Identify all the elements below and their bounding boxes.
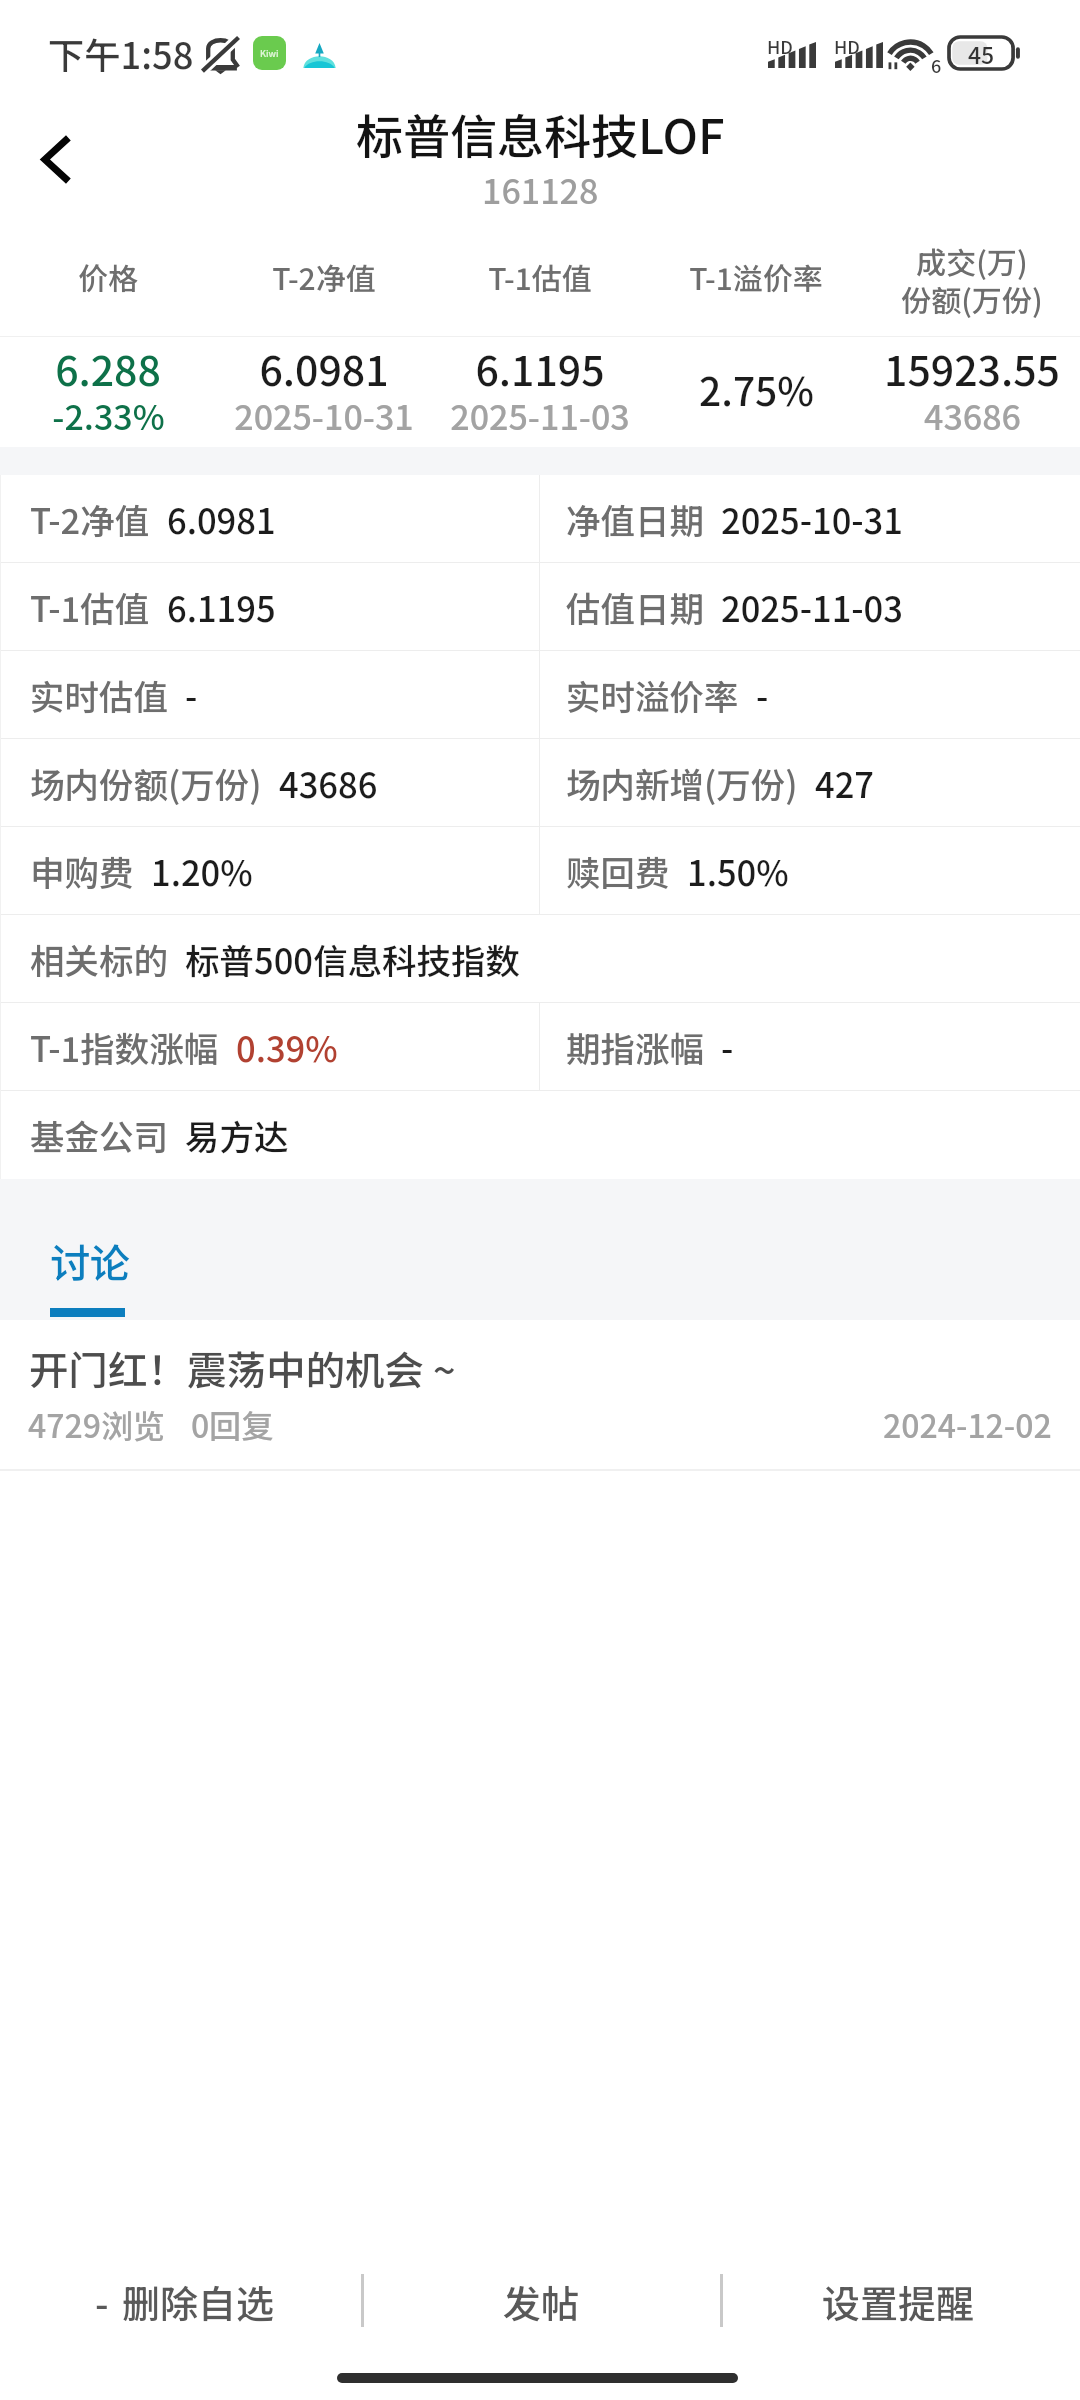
staticText: 相关标的 bbox=[30, 934, 168, 984]
button[interactable]: 设置提醒 bbox=[719, 2244, 1078, 2359]
button[interactable]: 发帖 bbox=[361, 2244, 721, 2359]
staticText: 2024-12-02 bbox=[883, 1401, 1052, 1447]
staticText: 427 bbox=[815, 758, 874, 808]
button[interactable]: T-1估值 bbox=[0, 563, 1080, 650]
staticText: 2025-10-31 bbox=[234, 391, 414, 440]
staticText: 6 bbox=[931, 52, 942, 78]
button[interactable]: T-2净值 bbox=[0, 475, 1080, 562]
staticText: 2025-10-31 bbox=[721, 494, 903, 544]
staticText: 43686 bbox=[924, 391, 1021, 440]
staticText: 实时溢价率 bbox=[566, 670, 739, 720]
staticText: 估值日期 bbox=[566, 582, 704, 632]
staticText: 161128 bbox=[482, 165, 599, 214]
button[interactable]: 实时估值 bbox=[0, 651, 1080, 738]
staticText: - bbox=[95, 2274, 109, 2329]
staticText: - bbox=[721, 1022, 734, 1072]
staticText: 标普信息科技LOF bbox=[356, 99, 725, 167]
staticText: HD bbox=[834, 33, 860, 59]
staticText: 下午1:58 bbox=[48, 27, 194, 80]
button[interactable]: 场内份额(万份) bbox=[0, 739, 1080, 826]
staticText: 6.1195 bbox=[475, 338, 605, 397]
staticText: 6.0981 bbox=[259, 338, 389, 397]
staticText: 45 bbox=[968, 37, 995, 69]
staticText: 讨论 bbox=[50, 1232, 130, 1290]
staticText: 删除自选 bbox=[122, 2274, 275, 2329]
staticText: 0回复 bbox=[191, 1401, 274, 1447]
button[interactable]: - bbox=[5, 2244, 365, 2359]
staticText: T-1溢价率 bbox=[689, 255, 823, 298]
staticText: 成交(万) bbox=[916, 239, 1028, 282]
staticText: 赎回费 bbox=[566, 846, 670, 896]
staticText: 2025-11-03 bbox=[450, 391, 630, 440]
staticText: 份额(万份) bbox=[901, 277, 1043, 320]
staticText: T-1估值 bbox=[488, 255, 592, 298]
staticText: T-2净值 bbox=[272, 255, 376, 298]
staticText: 设置提醒 bbox=[822, 2274, 975, 2329]
staticText: 6.1195 bbox=[167, 582, 276, 632]
button[interactable]: 开门红！震荡中的机会 ~ bbox=[0, 1320, 1080, 1472]
button[interactable]: 相关标的 bbox=[0, 915, 1080, 1002]
staticText: 0.39% bbox=[236, 1022, 338, 1072]
button[interactable]: 申购费 bbox=[0, 827, 1080, 914]
staticText: 净值日期 bbox=[566, 494, 704, 544]
staticText: - bbox=[756, 670, 769, 720]
button[interactable]: T-1指数涨幅 bbox=[0, 1003, 1080, 1090]
button[interactable]: Back bbox=[12, 118, 100, 206]
staticText: HD bbox=[767, 33, 793, 59]
staticText: Kiwi bbox=[260, 47, 279, 60]
button[interactable]: 基金公司 bbox=[0, 1091, 1080, 1178]
staticText: 2.75% bbox=[699, 361, 814, 417]
staticText: - bbox=[185, 670, 198, 720]
staticText: T-1估值 bbox=[30, 582, 150, 632]
staticText: 价格 bbox=[78, 255, 138, 298]
staticText: 1.20% bbox=[151, 846, 253, 896]
staticText: 实时估值 bbox=[30, 670, 168, 720]
staticText: 开门红！震荡中的机会 ~ bbox=[29, 1339, 456, 1396]
staticText: 期指涨幅 bbox=[566, 1022, 704, 1072]
staticText: 2025-11-03 bbox=[721, 582, 903, 632]
staticText: T-2净值 bbox=[30, 494, 150, 544]
staticText: 6.0981 bbox=[167, 494, 276, 544]
staticText: 易方达 bbox=[185, 1110, 289, 1160]
staticText: 基金公司 bbox=[30, 1110, 168, 1160]
staticText: T-1指数涨幅 bbox=[30, 1022, 219, 1072]
staticText: 申购费 bbox=[30, 846, 134, 896]
staticText: 1.50% bbox=[687, 846, 789, 896]
staticText: 6.288 bbox=[55, 338, 161, 397]
staticText: 场内新增(万份) bbox=[566, 758, 798, 808]
staticText: 15923.55 bbox=[884, 338, 1060, 397]
staticText: 发帖 bbox=[503, 2274, 580, 2329]
button[interactable]: 讨论 bbox=[38, 1217, 138, 1320]
staticText: 标普500信息科技指数 bbox=[185, 934, 520, 984]
staticText: 场内份额(万份) bbox=[30, 758, 262, 808]
staticText: 43686 bbox=[279, 758, 378, 808]
staticText: 4729浏览 bbox=[28, 1401, 165, 1447]
staticText: -2.33% bbox=[52, 391, 165, 440]
